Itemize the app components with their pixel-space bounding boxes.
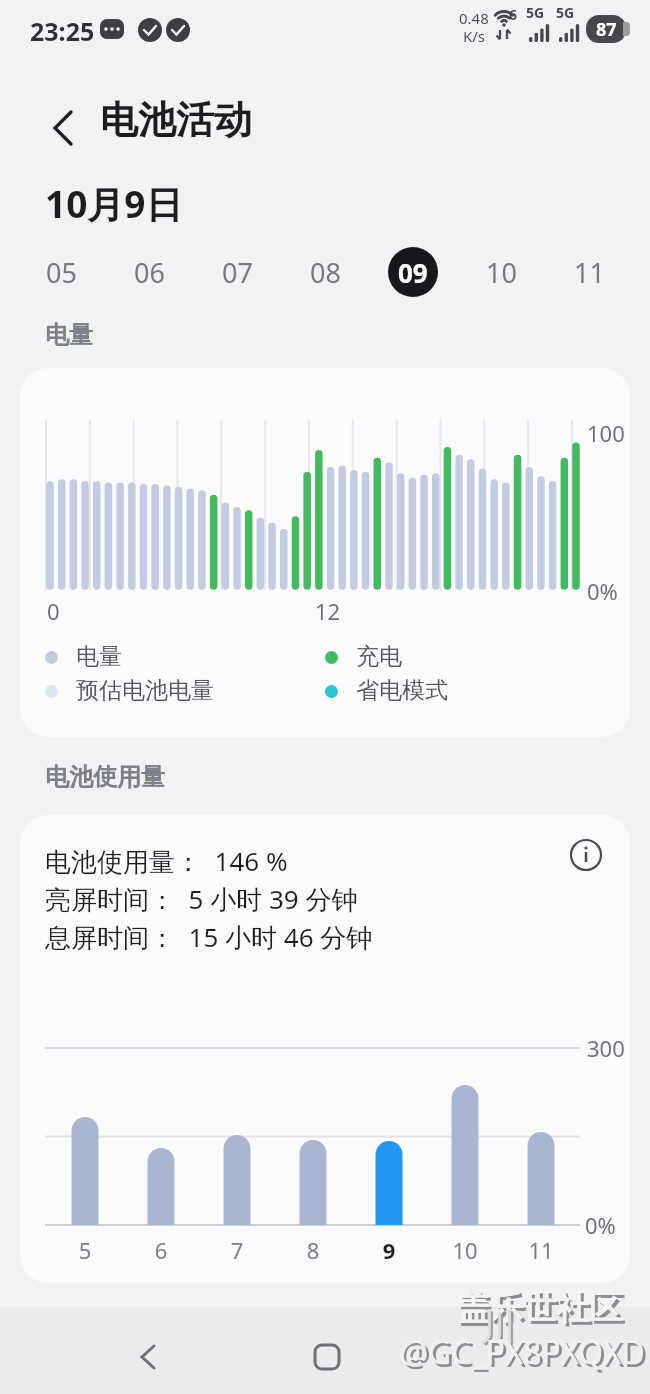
staticText: 0%: [585, 1210, 616, 1240]
button[interactable]: [126, 1335, 170, 1379]
staticText: 电池使用量： 146 %: [45, 843, 288, 879]
staticText: 电量: [76, 642, 122, 671]
staticText: 省电模式: [356, 676, 448, 705]
staticText: 5G: [526, 3, 545, 22]
staticText: @GC_PX8PXQXD: [399, 1330, 645, 1374]
button[interactable]: 11: [564, 247, 614, 297]
button[interactable]: 100: [20, 368, 630, 737]
staticText: 充电: [356, 642, 402, 671]
staticText: 预估电池电量: [76, 676, 214, 705]
staticText: 息屏时间： 15 小时 46 分钟: [45, 919, 373, 955]
staticText: @GC_PX8PXQXD: [402, 1333, 648, 1377]
staticText: 5: [65, 1235, 105, 1265]
staticText: 06: [134, 254, 165, 291]
staticText: 亮屏时间： 5 小时 39 分钟: [45, 881, 358, 917]
staticText: 电量: [45, 320, 93, 350]
button[interactable]: 06: [124, 247, 174, 297]
button[interactable]: 07: [212, 247, 262, 297]
staticText: 5G: [556, 3, 575, 22]
staticText: 23:25: [30, 14, 95, 48]
staticText: 10: [486, 254, 517, 291]
button[interactable]: 08: [300, 247, 350, 297]
staticText: 盖乐世社区: [460, 1290, 625, 1332]
staticText: 300: [587, 1033, 625, 1063]
staticText: 盖乐世社区: [457, 1287, 622, 1329]
staticText: 11: [574, 254, 605, 291]
staticText: 10: [445, 1235, 485, 1265]
button[interactable]: 09: [388, 247, 438, 297]
staticText: 6: [509, 5, 518, 24]
staticText: K/s: [463, 26, 486, 46]
staticText: 09: [398, 255, 428, 290]
staticText: 11: [521, 1235, 561, 1265]
button[interactable]: [40, 98, 84, 142]
staticText: 0: [47, 596, 60, 626]
staticText: 05: [46, 254, 77, 291]
staticText: 0%: [587, 576, 618, 606]
staticText: 10月9日: [45, 178, 183, 229]
button[interactable]: 10: [476, 247, 526, 297]
staticText: 电池活动: [100, 96, 252, 144]
staticText: 6: [141, 1235, 181, 1265]
button[interactable]: 电池使用量： 146 %: [20, 815, 630, 1283]
staticText: 0.48: [459, 8, 489, 28]
button[interactable]: [484, 1335, 528, 1379]
staticText: 07: [222, 254, 253, 291]
button[interactable]: [568, 837, 604, 873]
button[interactable]: 05: [36, 247, 86, 297]
staticText: 12: [315, 596, 341, 626]
button[interactable]: [305, 1335, 349, 1379]
staticText: 08: [310, 254, 341, 291]
staticText: 电池使用量: [45, 762, 165, 792]
staticText: 川: [482, 1306, 518, 1351]
staticText: 9: [369, 1235, 409, 1265]
staticText: 87: [596, 17, 617, 42]
staticText: 100: [587, 418, 625, 448]
staticText: 7: [217, 1235, 257, 1265]
staticText: 8: [293, 1235, 333, 1265]
staticText: 川: [480, 1304, 516, 1349]
